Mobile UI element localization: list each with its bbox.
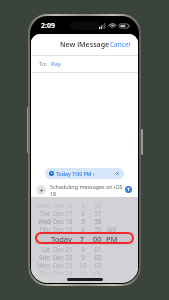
staticText: Dec 23	[53, 261, 73, 269]
button[interactable]: Today 7:00 PM ›	[45, 168, 124, 179]
button[interactable]: Send	[124, 185, 133, 194]
button[interactable]: To:	[31, 56, 138, 72]
staticText: Today	[51, 234, 72, 244]
staticText: Wed	[38, 217, 51, 225]
staticText: 03	[92, 261, 104, 269]
button[interactable]: Mon	[31, 201, 138, 209]
staticText: Ray	[51, 60, 62, 68]
staticText: PM	[106, 234, 118, 244]
staticText: 5	[78, 217, 88, 225]
button[interactable]: Today	[35, 233, 134, 245]
staticText: 58	[92, 217, 104, 225]
staticText: To:	[39, 60, 48, 68]
staticText: 11	[78, 269, 88, 275]
staticText: Dec 22	[53, 253, 73, 261]
staticText: 7	[77, 234, 87, 244]
staticText: 00	[91, 234, 103, 244]
staticText: Dec 16	[53, 201, 73, 209]
staticText: 02	[92, 253, 104, 261]
other: Remove schedule	[115, 171, 120, 176]
button[interactable]: Tue	[31, 209, 138, 217]
button[interactable]: Sun	[31, 253, 138, 261]
staticText: 59	[92, 225, 104, 233]
staticText: 6	[78, 225, 88, 233]
staticText: 57	[92, 209, 104, 217]
button[interactable]: Thu	[31, 225, 138, 233]
staticText: New iMessage	[60, 40, 110, 50]
staticText: Today 7:00 PM ›	[56, 170, 95, 177]
staticText: Sun	[39, 253, 51, 261]
staticText: Sat	[41, 245, 51, 253]
button[interactable]: Cancel	[103, 36, 138, 53]
staticText: Scheduling messages on iOS 18	[50, 183, 124, 197]
staticText: 56	[92, 201, 104, 209]
staticText: 2:09	[41, 21, 55, 31]
staticText: 4	[78, 209, 88, 217]
staticText: Mon	[37, 261, 51, 269]
button[interactable]: Mon	[31, 261, 138, 269]
staticText: Tue	[40, 269, 51, 275]
staticText: Dec 18	[53, 217, 73, 225]
button[interactable]: Add attachment	[36, 185, 46, 195]
staticText: Tue	[40, 209, 51, 217]
staticText: AM	[107, 225, 117, 233]
staticText: 3	[78, 201, 88, 209]
staticText: 9	[78, 253, 88, 261]
staticText: Dec 17	[53, 209, 73, 217]
staticText: Dec 19	[53, 225, 73, 233]
staticText: Thu	[39, 225, 51, 233]
staticText: Dec 24	[53, 269, 73, 275]
staticText: 8	[78, 245, 88, 253]
staticText: 01	[92, 245, 104, 253]
staticText: Cancel	[110, 40, 131, 49]
staticText: Mon	[37, 201, 51, 209]
staticText: 10	[78, 261, 88, 269]
button[interactable]: Sat	[31, 245, 138, 253]
staticText: Dec 21	[53, 245, 73, 253]
button[interactable]: Tue	[31, 269, 138, 275]
button[interactable]: Wed	[31, 217, 138, 225]
staticText: 04	[92, 269, 104, 275]
